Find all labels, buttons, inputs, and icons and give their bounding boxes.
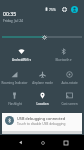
button[interactable]: Home: [36, 135, 49, 150]
staticText: Cast screen: [61, 102, 78, 106]
button[interactable]: Back: [14, 135, 27, 150]
staticText: Airplane mode: [32, 81, 53, 85]
button[interactable]: Roaming Indicator: [1, 71, 28, 85]
staticText: 00:35: [3, 10, 17, 17]
staticText: Touch to disable USB debugging: [17, 122, 66, 126]
other: Flashlight: [11, 92, 18, 99]
staticText: 75%: [49, 7, 56, 12]
button[interactable]: User profile: [71, 6, 78, 13]
button[interactable]: Auto-rotate: [56, 71, 83, 85]
other: Auto-rotate: [66, 71, 73, 78]
staticText: AndroidWifi ▾: [12, 58, 31, 62]
staticText: Flashlight: [8, 102, 22, 106]
button[interactable]: Brightness: [0, 31, 84, 43]
button[interactable]: Bluetooth: [43, 48, 83, 62]
button[interactable]: Cast screen: [56, 92, 83, 106]
staticText: Friday, Jul 24: [3, 18, 24, 23]
other: Cast screen: [66, 92, 73, 99]
button[interactable]: Flashlight: [1, 92, 28, 106]
button[interactable]: Airplane mode: [29, 71, 56, 85]
staticText: Location: [36, 102, 49, 106]
staticText: Roaming Indicator: [1, 81, 28, 85]
other: Bluetooth: [60, 48, 67, 55]
button[interactable]: Recents: [59, 135, 72, 150]
other: Airplane mode: [39, 71, 46, 78]
staticText: USB debugging connected: [17, 116, 66, 121]
staticText: Bluetooth ▾: [55, 58, 72, 62]
other: Roaming Indicator: [11, 71, 18, 78]
other: Wi-Fi: [18, 48, 25, 55]
other: Location: [39, 92, 46, 99]
button[interactable]: Location: [29, 92, 56, 106]
button[interactable]: Settings: [60, 5, 68, 13]
button[interactable]: Wi-Fi: [1, 48, 41, 62]
button[interactable]: USB debugging connected: [2, 113, 82, 131]
staticText: Auto-rotate: [61, 81, 78, 85]
